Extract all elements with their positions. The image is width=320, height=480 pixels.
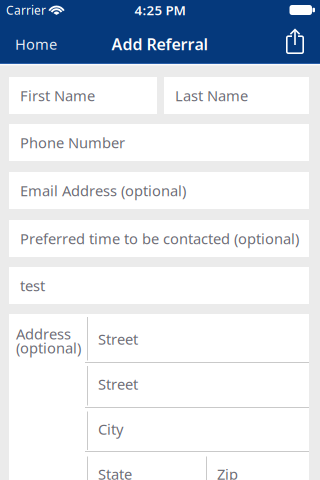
staticText: 4:25 PM <box>134 1 185 19</box>
button[interactable]: Home <box>0 32 57 51</box>
button[interactable]: Zip <box>207 451 309 480</box>
button[interactable]: Phone Number <box>9 124 309 161</box>
button[interactable]: Email Address (optional) <box>9 172 309 209</box>
staticText: Zip <box>217 464 238 480</box>
staticText: State <box>98 464 132 480</box>
staticText: Add Referral <box>111 33 208 55</box>
staticText: test <box>20 276 45 295</box>
staticText: Street <box>98 329 138 349</box>
staticText: Email Address (optional) <box>20 181 186 200</box>
staticText: First Name <box>20 86 95 105</box>
staticText: Last Name <box>175 86 248 105</box>
staticText: Home <box>15 34 57 54</box>
staticText: City <box>98 419 123 439</box>
button[interactable]: Preferred time to be contacted (optional… <box>9 220 309 257</box>
button[interactable]: Last Name <box>164 77 309 114</box>
staticText: Phone Number <box>20 133 125 152</box>
button[interactable]: test <box>9 267 309 304</box>
button[interactable]: Street <box>88 361 309 406</box>
button[interactable]: City <box>88 406 309 451</box>
button[interactable]: Street <box>88 316 309 361</box>
button[interactable]: State <box>88 451 206 480</box>
staticText: Preferred time to be contacted (optional… <box>20 229 299 248</box>
staticText: (optional) <box>16 338 81 357</box>
button[interactable]: First Name <box>9 77 157 114</box>
button[interactable]: Share <box>286 29 320 54</box>
staticText: Address <box>16 324 71 343</box>
staticText: Carrier <box>6 2 46 18</box>
staticText: Street <box>98 374 138 394</box>
